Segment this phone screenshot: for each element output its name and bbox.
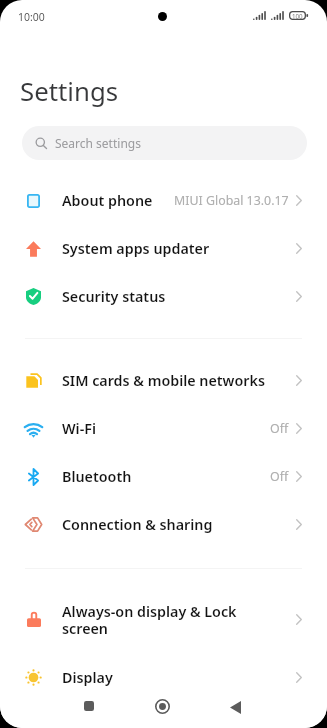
button[interactable]: Back <box>214 688 256 728</box>
staticText: MIUI Global 13.0.17 <box>174 192 289 209</box>
button[interactable]: SIM cards & mobile networks <box>0 356 327 404</box>
staticText: 100 <box>292 12 303 20</box>
button[interactable]: Recents <box>68 688 110 728</box>
staticText: Connection & sharing <box>62 515 296 534</box>
staticText: SIM cards & mobile networks <box>62 371 296 390</box>
staticText: Always-on display & Lock screen <box>62 602 296 638</box>
staticText: About phone <box>62 191 174 210</box>
staticText: System apps updater <box>62 239 296 258</box>
staticText: Search settings <box>55 135 141 151</box>
button[interactable]: Always-on display & Lock screen <box>0 586 327 653</box>
button[interactable]: System apps updater <box>0 224 327 272</box>
button[interactable]: About phone <box>0 176 327 224</box>
staticText: 10:00 <box>18 10 45 24</box>
staticText: Display <box>62 668 296 687</box>
button[interactable]: Connection & sharing <box>0 500 327 548</box>
staticText: Security status <box>62 287 296 306</box>
button[interactable]: Display <box>0 653 327 701</box>
staticText: Off <box>270 420 289 437</box>
staticText: Settings <box>20 73 119 108</box>
staticText: Wi-Fi <box>62 419 270 438</box>
button[interactable]: Search settings <box>22 126 307 160</box>
button[interactable]: Security status <box>0 272 327 320</box>
staticText: Off <box>270 468 289 485</box>
button[interactable]: Bluetooth <box>0 452 327 500</box>
button[interactable]: Wi-Fi <box>0 404 327 452</box>
button[interactable]: Home <box>141 688 183 728</box>
staticText: Bluetooth <box>62 467 270 486</box>
